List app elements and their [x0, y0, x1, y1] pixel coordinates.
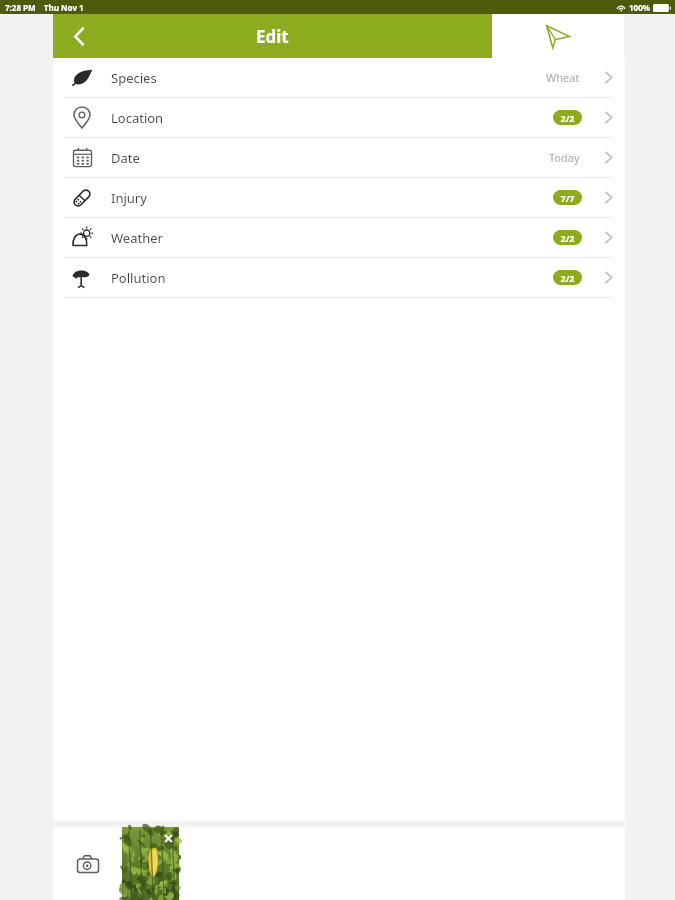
button[interactable]: Pollution — [53, 258, 625, 297]
staticText: 2/2 — [560, 112, 575, 124]
staticText: Date — [111, 149, 140, 167]
staticText: Thu Nov 1 — [44, 2, 84, 13]
button[interactable]: Location — [53, 98, 625, 137]
staticText: Wheat — [546, 70, 580, 85]
staticText: 2/2 — [560, 272, 575, 284]
staticText: Species — [111, 69, 157, 87]
button[interactable]: Species — [53, 58, 625, 97]
button[interactable]: Remove photo — [157, 827, 179, 849]
staticText: 7:28 PM — [5, 2, 36, 13]
button[interactable]: Injury — [53, 178, 625, 217]
button[interactable]: Weather — [53, 218, 625, 257]
button[interactable]: Back — [53, 14, 105, 58]
staticText: Weather — [111, 229, 163, 247]
staticText: 2/2 — [560, 232, 575, 244]
staticText: 100% — [629, 2, 650, 13]
staticText: 7/7 — [560, 192, 575, 204]
button[interactable]: Take photo — [53, 827, 122, 900]
staticText: Location — [111, 109, 164, 127]
button[interactable]: Date — [53, 138, 625, 177]
staticText: Today — [549, 150, 580, 165]
staticText: Injury — [111, 189, 147, 207]
staticText: Edit — [256, 25, 289, 48]
button[interactable]: Send — [492, 14, 624, 58]
button[interactable]: Photo — [122, 827, 179, 900]
staticText: Pollution — [111, 269, 166, 287]
